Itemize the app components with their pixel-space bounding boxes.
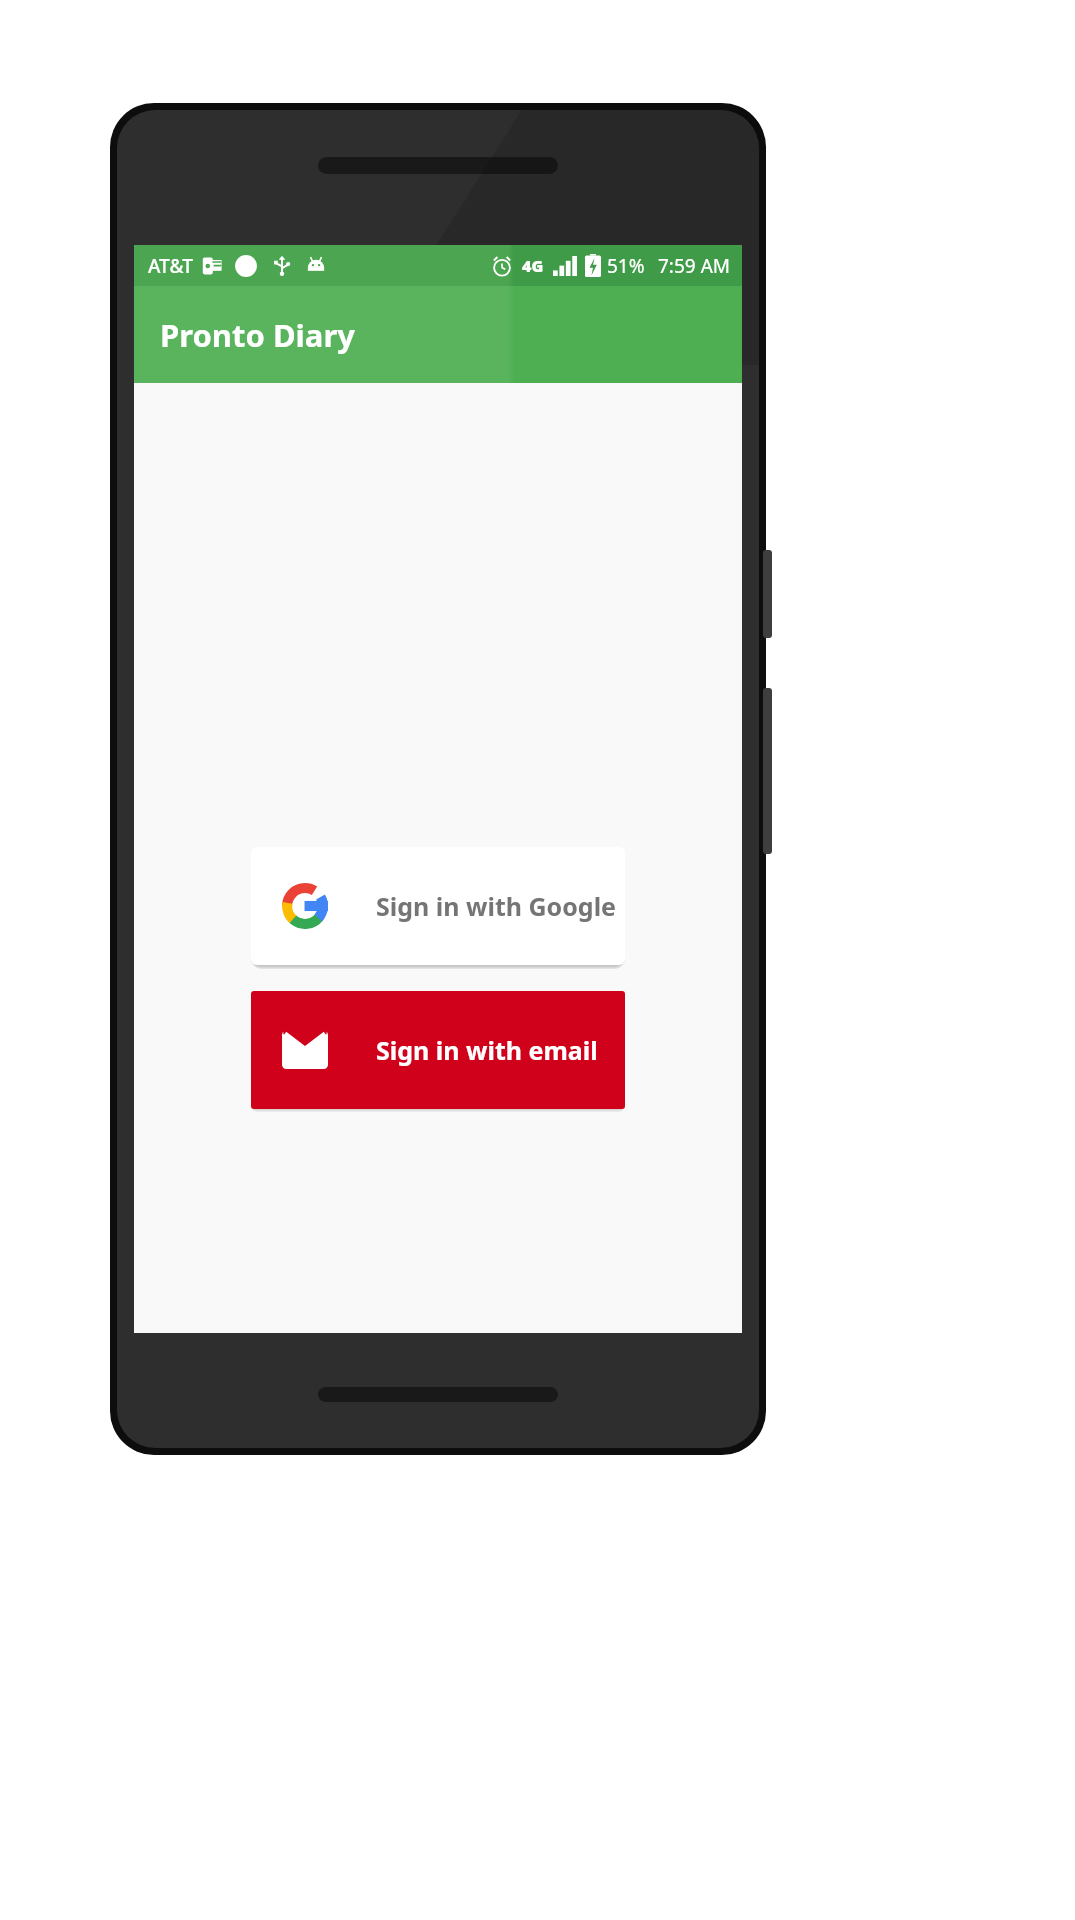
staticText: 7:59 AM	[658, 253, 731, 279]
staticText: 4G	[522, 255, 544, 277]
staticText: 51%	[607, 253, 645, 279]
staticText: Pronto Diary	[160, 314, 355, 356]
staticText: Sign in with Google	[376, 889, 617, 923]
button[interactable]: Sign in with Google	[251, 847, 625, 965]
staticText: Sign in with email	[376, 1033, 598, 1067]
staticText: AT&T	[148, 253, 193, 279]
button[interactable]: Sign in with email	[251, 991, 625, 1109]
